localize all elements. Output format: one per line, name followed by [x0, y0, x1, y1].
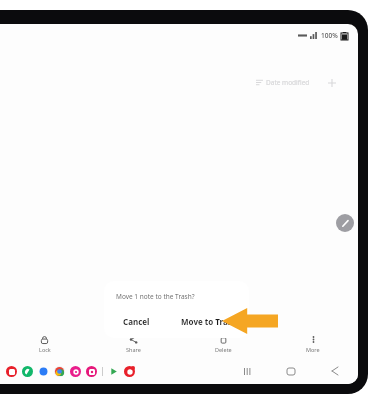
staticText: Date modified [266, 78, 310, 87]
button[interactable]: Delete [178, 330, 268, 358]
button[interactable]: Lock [0, 330, 89, 358]
button[interactable]: More [268, 330, 358, 358]
button[interactable]: Date modified [252, 74, 314, 91]
button[interactable]: Cancel [104, 310, 168, 332]
button[interactable]: App [22, 366, 33, 377]
button[interactable]: Back [326, 362, 344, 380]
staticText: Move to Trash [181, 316, 237, 327]
staticText: Delete [215, 346, 232, 353]
button[interactable]: App [54, 366, 65, 377]
button[interactable]: App [124, 366, 135, 377]
staticText: Lock [39, 346, 51, 353]
button[interactable]: Recent apps [238, 362, 256, 380]
button[interactable]: Edge panel pen [336, 214, 354, 232]
button[interactable]: Add note [324, 75, 340, 91]
staticText: More [306, 346, 320, 353]
button[interactable]: App [6, 366, 17, 377]
button[interactable]: App [70, 366, 81, 377]
button[interactable]: Share [89, 330, 178, 358]
button[interactable]: Home [282, 362, 300, 380]
staticText: Cancel [123, 316, 150, 327]
staticText: Share [126, 346, 141, 353]
staticText: 100% [321, 31, 338, 40]
staticText: Move 1 note to the Trash? [116, 292, 195, 301]
button[interactable]: App [86, 366, 97, 377]
button[interactable]: Move to Trash [168, 310, 249, 332]
